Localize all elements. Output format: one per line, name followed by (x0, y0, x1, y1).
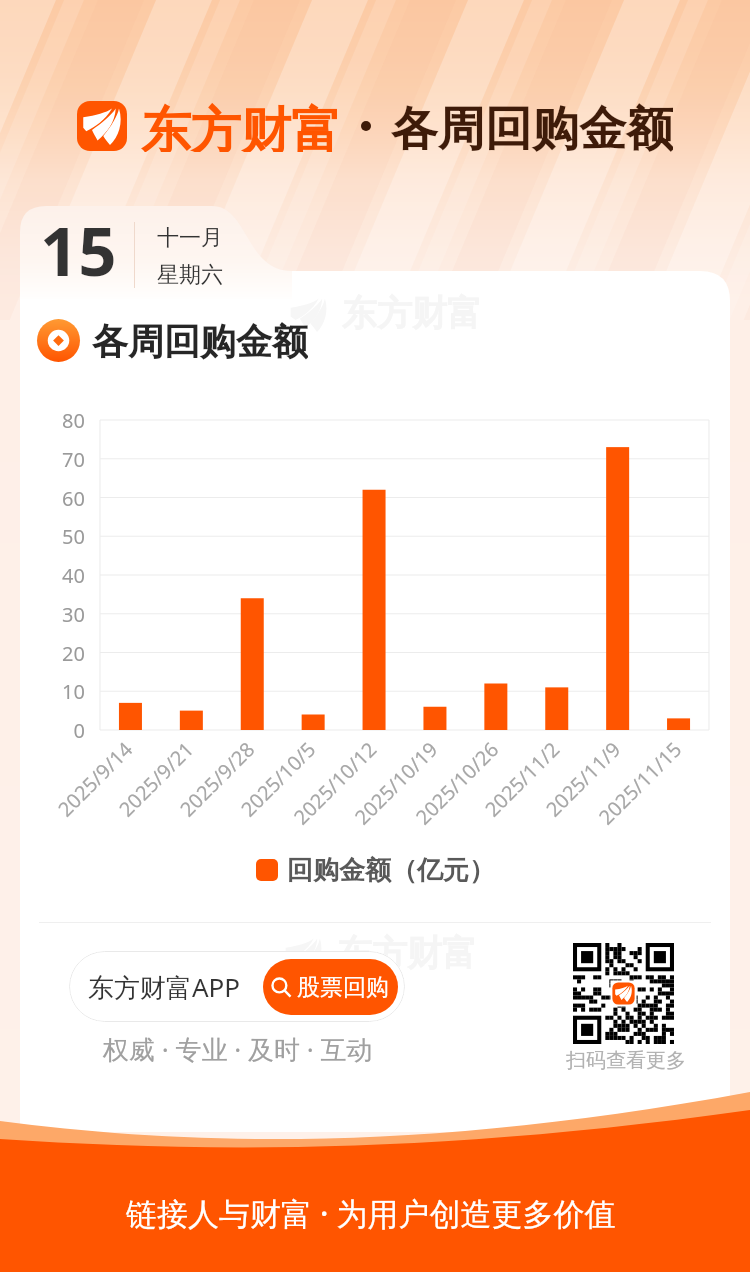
staticText: 2025/9/21 (88, 736, 199, 847)
staticText: 各周回购金额 (92, 319, 308, 362)
staticText: 2025/10/19 (332, 736, 443, 847)
staticText: 星期六 (157, 261, 223, 289)
staticText: 80 (0, 407, 85, 434)
staticText: 60 (0, 485, 85, 512)
button[interactable]: 东方财富APP (69, 951, 405, 1022)
staticText: 东方财富APP (88, 969, 241, 1005)
staticText: 2025/10/26 (393, 736, 504, 847)
staticText: 扫码查看更多 (566, 1048, 686, 1073)
staticText: 2025/10/12 (271, 736, 382, 847)
staticText: 2025/9/14 (27, 736, 138, 847)
staticText: 东方财富 (342, 291, 482, 335)
staticText: 10 (0, 678, 85, 705)
staticText: 2025/9/28 (149, 736, 260, 847)
staticText: 50 (0, 523, 85, 550)
staticText: 0 (0, 717, 85, 744)
staticText: 30 (0, 601, 85, 628)
staticText: 东方财富 (141, 100, 341, 152)
staticText: 2025/11/15 (576, 736, 687, 847)
staticText: 40 (0, 562, 85, 589)
staticText: 股票回购 (297, 973, 389, 1002)
staticText: 2025/10/5 (210, 736, 321, 847)
staticText: 十一月 (157, 224, 223, 252)
staticText: 20 (0, 640, 85, 667)
staticText: 权威 · 专业 · 及时 · 互动 (103, 1031, 373, 1067)
other: Search (271, 977, 292, 998)
staticText: 东方财富 (337, 931, 477, 975)
staticText: 15 (40, 204, 117, 295)
staticText: 链接人与财富 · 为用户创造更多价值 (126, 1192, 616, 1234)
staticText: 2025/11/9 (515, 736, 626, 847)
staticText: 回购金额（亿元） (287, 854, 495, 887)
staticText: 70 (0, 446, 85, 473)
button[interactable]: Search (271, 959, 389, 1015)
staticText: 2025/11/2 (454, 736, 565, 847)
staticText: 各周回购金额 (391, 100, 673, 152)
